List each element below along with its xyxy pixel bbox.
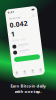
staticText: Balance <box>12 15 24 18</box>
staticText: 9:41 <box>11 9 18 12</box>
staticText: 0.0421 <box>12 19 30 37</box>
staticText: Earn Bitcoin daily <box>10 83 45 89</box>
staticText: with one tap. <box>14 89 41 94</box>
